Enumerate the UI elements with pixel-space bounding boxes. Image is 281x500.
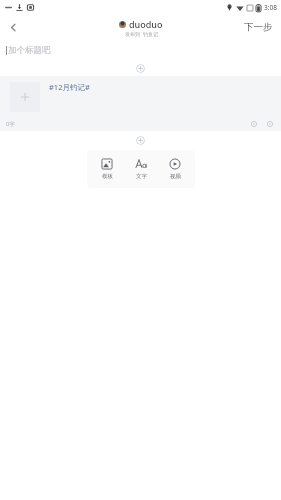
staticText: 加个标题吧: [8, 45, 51, 56]
button[interactable]: 加个标题吧: [0, 40, 281, 60]
button[interactable]: Settings: [249, 119, 259, 129]
staticText: 视频: [170, 173, 181, 180]
staticText: 模板: [102, 173, 113, 180]
staticText: #12月钓记#: [49, 82, 90, 92]
button[interactable]: 文字: [131, 157, 151, 181]
button[interactable]: Add image: [0, 76, 281, 131]
staticText: 文字: [136, 173, 147, 180]
staticText: 0字: [6, 120, 15, 128]
button[interactable]: Add image: [10, 82, 40, 112]
staticText: 钓鱼记: [143, 31, 158, 37]
staticText: 发布到: [125, 31, 140, 37]
button[interactable]: 下一步: [236, 17, 281, 37]
button[interactable]: Back: [0, 14, 26, 40]
button[interactable]: 模板: [97, 157, 117, 181]
button[interactable]: More options: [265, 119, 275, 129]
button[interactable]: duoduo: [119, 18, 163, 37]
button[interactable]: 视频: [165, 157, 185, 181]
staticText: duoduo: [129, 18, 163, 30]
staticText: 3:08: [264, 3, 277, 12]
button[interactable]: Add content: [136, 136, 145, 145]
button[interactable]: Add block: [136, 64, 145, 73]
staticText: 下一步: [244, 21, 273, 33]
